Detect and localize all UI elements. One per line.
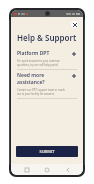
staticText: For quick answers to your common questio…: [17, 59, 68, 67]
other: Expand: [71, 51, 77, 57]
staticText: SUBMIT: [39, 149, 55, 154]
button[interactable]: Recents: [22, 165, 32, 175]
button[interactable]: SUBMIT: [16, 146, 78, 157]
button[interactable]: Close: [71, 21, 78, 28]
staticText: Contact our DPT support team or reach ou…: [17, 88, 68, 96]
staticText: Platform DPT: [17, 50, 50, 57]
button[interactable]: Platform DPT: [11, 48, 83, 69]
staticText: Help & Support: [17, 32, 77, 43]
other: Expand: [71, 73, 77, 79]
button[interactable]: Need more assistance?: [11, 70, 83, 98]
button[interactable]: Home: [42, 165, 52, 175]
button[interactable]: Back: [63, 165, 73, 175]
staticText: Need more assistance?: [17, 72, 68, 86]
